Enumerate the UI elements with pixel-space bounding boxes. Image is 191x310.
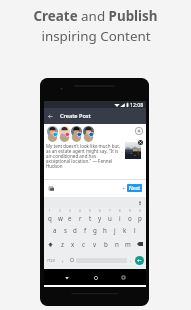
staticText: w	[58, 214, 63, 222]
button[interactable]: 4	[75, 208, 85, 223]
staticText: x	[71, 240, 75, 248]
button[interactable]: ?123	[44, 251, 58, 269]
staticText: z	[61, 240, 64, 248]
staticText: 7	[109, 209, 111, 213]
staticText: My tent doesn't look like much but, as a…	[46, 143, 122, 169]
staticText: s	[64, 226, 67, 234]
staticText: Create Post	[60, 112, 91, 120]
button[interactable]: Add photo	[49, 186, 54, 191]
button[interactable]: l	[130, 223, 140, 237]
button[interactable]: s	[60, 223, 70, 237]
button[interactable]: d	[70, 223, 80, 237]
button[interactable]: k	[120, 223, 130, 237]
button[interactable]: 0	[135, 208, 145, 223]
button[interactable]: Tagged friend	[47, 126, 58, 137]
staticText: y	[98, 214, 102, 222]
button[interactable]: j	[110, 223, 120, 237]
staticText: i	[119, 214, 121, 222]
button[interactable]: ,	[58, 251, 67, 269]
button[interactable]: h	[100, 223, 110, 237]
button[interactable]: 7	[105, 208, 115, 223]
button[interactable]: 3	[65, 208, 75, 223]
staticText: p	[138, 214, 142, 222]
button[interactable]: f	[80, 223, 90, 237]
staticText: 4	[79, 209, 81, 213]
staticText: a	[53, 226, 57, 234]
button[interactable]: Home	[90, 272, 101, 283]
staticText: j	[114, 226, 116, 234]
button[interactable]: Voice input	[138, 201, 142, 205]
button[interactable]: Remove image	[138, 140, 143, 145]
staticText: 2	[59, 209, 61, 213]
staticText: f	[84, 226, 87, 234]
staticText: h	[103, 226, 107, 234]
staticText: Next	[129, 185, 141, 192]
staticText: 3	[69, 209, 71, 213]
button[interactable]: v	[89, 237, 100, 251]
staticText: n	[115, 240, 119, 248]
staticText: Create and Publish	[33, 7, 158, 25]
button[interactable]: Next	[127, 184, 142, 192]
button[interactable]: Tagged friend	[71, 126, 82, 137]
button[interactable]: .	[127, 251, 135, 269]
staticText: 8	[119, 209, 121, 213]
staticText: t	[89, 214, 92, 222]
button[interactable]: Backspace	[133, 237, 146, 251]
staticText: m	[125, 240, 131, 248]
button[interactable]: 1	[45, 208, 55, 223]
staticText: 1	[49, 209, 51, 213]
button[interactable]: z	[57, 237, 67, 251]
staticText: q	[48, 214, 52, 222]
staticText: g	[93, 226, 97, 234]
staticText: v	[93, 240, 97, 248]
button[interactable]: a	[50, 223, 60, 237]
staticText: .	[130, 256, 132, 263]
staticText: 6	[99, 209, 101, 213]
button[interactable]: 6	[95, 208, 105, 223]
staticText: 9	[129, 209, 131, 213]
staticText: inspiring Content	[41, 27, 151, 45]
staticText: k	[123, 226, 127, 234]
button[interactable]: Back	[46, 112, 55, 121]
button[interactable]: Emoji	[67, 251, 76, 269]
staticText: 12:08	[130, 101, 144, 108]
staticText: 5	[89, 209, 91, 213]
staticText: 0	[139, 209, 141, 213]
staticText: ,	[62, 256, 64, 263]
staticText: o	[128, 214, 132, 222]
button[interactable]: Shift	[44, 237, 57, 251]
button[interactable]: 5	[85, 208, 95, 223]
button[interactable]: 8	[115, 208, 125, 223]
button[interactable]: Back	[61, 272, 72, 283]
button[interactable]: Tagged friend	[83, 126, 94, 137]
staticText: l	[134, 226, 136, 234]
staticText: r	[79, 214, 82, 222]
button[interactable]: m	[122, 237, 133, 251]
staticText: e	[68, 214, 72, 222]
button[interactable]: Recents	[118, 272, 129, 283]
button[interactable]: Add person	[135, 127, 143, 135]
button[interactable]: b	[100, 237, 111, 251]
staticText: u	[108, 214, 112, 222]
button[interactable]: n	[111, 237, 122, 251]
button[interactable]: x	[67, 237, 78, 251]
staticText: ?123	[47, 258, 55, 263]
button[interactable]: g	[90, 223, 100, 237]
button[interactable]: 9	[125, 208, 135, 223]
staticText: b	[104, 240, 108, 248]
button[interactable]: Tagged friend	[59, 126, 70, 137]
staticText: d	[73, 226, 77, 234]
staticText: c	[82, 240, 85, 248]
button[interactable]: c	[78, 237, 89, 251]
button[interactable]: 2	[55, 208, 65, 223]
button[interactable]: Send	[135, 256, 144, 265]
